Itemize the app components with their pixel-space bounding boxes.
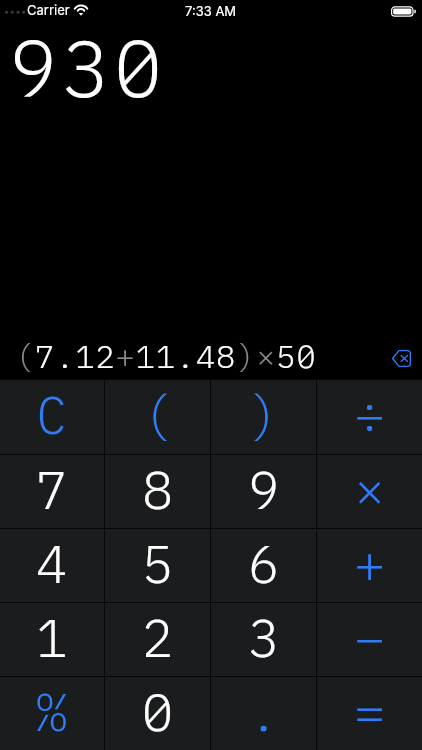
staticText: = [354, 678, 386, 746]
staticText: Carrier [27, 2, 70, 18]
staticText: . [248, 678, 280, 746]
staticText: (7.12+11.48)×50 [15, 335, 317, 377]
staticText: % [36, 678, 68, 746]
button[interactable]: . [211, 677, 316, 750]
staticText: − [354, 604, 386, 672]
staticText: ( [142, 381, 174, 449]
button[interactable]: ( [105, 380, 210, 454]
button[interactable]: 6 [211, 529, 316, 602]
button[interactable]: = [317, 677, 422, 750]
staticText: 4 [36, 530, 68, 598]
staticText: ÷ [354, 381, 386, 449]
staticText: 8 [142, 456, 174, 524]
staticText: 7:33 AM [185, 3, 237, 19]
staticText: C [36, 381, 68, 449]
button[interactable]: ) [211, 380, 316, 454]
staticText: 930 [9, 15, 167, 119]
button[interactable]: 0 [105, 677, 210, 750]
button[interactable]: 2 [105, 603, 210, 676]
staticText: 3 [248, 604, 280, 672]
button[interactable]: × [317, 455, 422, 528]
button[interactable]: 4 [0, 529, 104, 602]
button[interactable]: C [0, 380, 104, 454]
staticText: ) [248, 381, 280, 449]
staticText: × [354, 456, 386, 524]
staticText: 6 [248, 530, 280, 598]
staticText: 1 [36, 604, 68, 672]
staticText: 5 [142, 530, 174, 598]
button[interactable]: % [0, 677, 104, 750]
button[interactable]: 7 [0, 455, 104, 528]
staticText: 0 [142, 678, 174, 746]
button[interactable]: 5 [105, 529, 210, 602]
button[interactable]: − [317, 603, 422, 676]
staticText: 7 [36, 456, 68, 524]
button[interactable]: 8 [105, 455, 210, 528]
staticText: + [354, 530, 386, 598]
button[interactable]: 9 [211, 455, 316, 528]
button[interactable]: + [317, 529, 422, 602]
button[interactable]: ÷ [317, 380, 422, 454]
button[interactable]: 3 [211, 603, 316, 676]
staticText: 2 [142, 604, 174, 672]
button[interactable]: Backspace [379, 336, 422, 380]
staticText: 9 [248, 456, 280, 524]
button[interactable]: 1 [0, 603, 104, 676]
